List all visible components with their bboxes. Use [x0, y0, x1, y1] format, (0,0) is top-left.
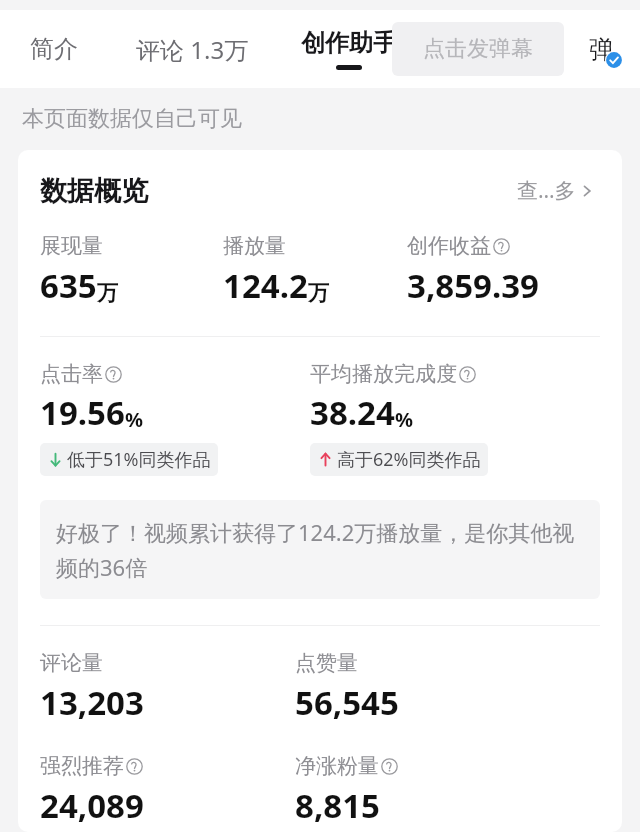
staticText: 点赞量 — [295, 650, 358, 676]
staticText: 124.2 — [223, 263, 308, 308]
button[interactable]: 简介 — [26, 26, 82, 72]
staticText: 8,815 — [295, 783, 380, 828]
staticText: 38.24 — [310, 390, 395, 435]
staticText: 56,545 — [295, 680, 399, 725]
staticText: 点击发弹幕 — [423, 35, 533, 63]
button[interactable]: 弹幕开关 — [574, 22, 628, 76]
staticText: 本页面数据仅自己可见 — [22, 105, 242, 133]
button[interactable]: 查…多 — [513, 172, 600, 209]
staticText: 13,203 — [40, 680, 144, 725]
staticText: 强烈推荐 — [40, 753, 124, 779]
staticText: % — [395, 406, 414, 433]
button[interactable]: 低于51%同类作品 — [40, 443, 218, 476]
staticText: 评论 1.3万 — [136, 33, 249, 66]
staticText: 好极了！视频累计获得了124.2万播放量，是你其他视频的36倍 — [56, 517, 584, 582]
staticText: 24,089 — [40, 783, 144, 828]
button[interactable]: 好极了！视频累计获得了124.2万播放量，是你其他视频的36倍 — [40, 500, 600, 599]
staticText: 评论量 — [40, 650, 103, 676]
staticText: 19.56 — [40, 390, 125, 435]
staticText: 万 — [97, 280, 118, 306]
staticText: 数据概览 — [40, 174, 148, 208]
staticText: 万 — [308, 280, 329, 306]
button[interactable]: 创作助手 — [299, 28, 399, 70]
button[interactable]: 高于62%同类作品 — [310, 443, 488, 476]
button[interactable]: 评论 1.3万 — [132, 25, 253, 74]
staticText: 3,859.39 — [407, 263, 539, 308]
staticText: 635 — [40, 263, 97, 308]
staticText: 低于51%同类作品 — [67, 447, 211, 472]
staticText: 平均播放完成度 — [310, 361, 457, 387]
staticText: 净涨粉量 — [295, 753, 379, 779]
button[interactable]: 点击发弹幕 — [392, 22, 564, 76]
staticText: 高于62%同类作品 — [337, 447, 481, 472]
staticText: 查…多 — [517, 176, 576, 205]
other: Verified — [605, 51, 623, 69]
staticText: % — [125, 406, 144, 433]
staticText: 点击率 — [40, 361, 103, 387]
staticText: 创作收益 — [407, 233, 491, 259]
staticText: 简介 — [30, 34, 78, 64]
staticText: 创作助手 — [301, 28, 397, 58]
staticText: 展现量 — [40, 233, 103, 259]
staticText: 播放量 — [223, 233, 286, 259]
staticText: 弹 — [589, 34, 614, 65]
